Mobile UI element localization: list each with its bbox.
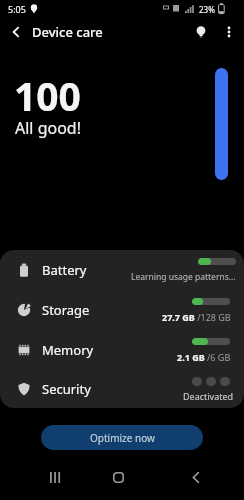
button[interactable]: [220, 23, 238, 41]
button[interactable]: [107, 466, 129, 488]
staticText: Storage: [42, 301, 90, 319]
staticText: Optimize now: [90, 431, 155, 445]
button[interactable]: [6, 22, 26, 42]
button[interactable]: Storage: [0, 290, 244, 330]
button[interactable]: [44, 466, 66, 488]
staticText: Battery: [42, 261, 87, 279]
staticText: 27.7 GB /128 GB: [162, 311, 231, 323]
staticText: Security: [42, 380, 91, 398]
staticText: Memory: [42, 341, 94, 359]
staticText: 5:05: [8, 3, 26, 15]
staticText: Device care: [32, 23, 103, 41]
button[interactable]: Security: [0, 370, 244, 408]
button[interactable]: [185, 466, 207, 488]
staticText: All good!: [15, 117, 81, 139]
staticText: 2.1 GB /6 GB: [177, 351, 231, 363]
button[interactable]: Optimize now: [41, 425, 203, 450]
staticText: 23%: [199, 4, 215, 15]
button[interactable]: Memory: [0, 330, 244, 370]
staticText: Deactivated: [183, 390, 234, 402]
staticText: Learning usage patterns...: [131, 271, 236, 283]
button[interactable]: [192, 23, 210, 41]
button[interactable]: Battery: [0, 250, 244, 290]
staticText: 100: [14, 69, 81, 122]
